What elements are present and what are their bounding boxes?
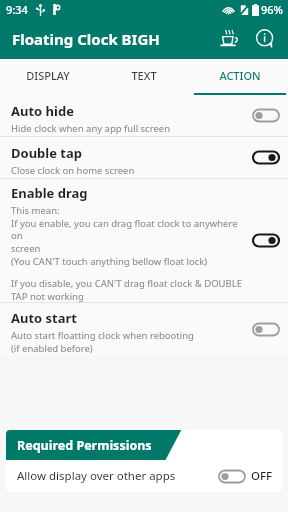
button[interactable]: Buy me a coffee: [213, 23, 245, 55]
staticText: screen: [11, 242, 41, 255]
staticText: Floating Clock BIGH: [12, 29, 160, 49]
button[interactable]: Off: [252, 322, 280, 337]
button[interactable]: ACTION: [192, 59, 288, 95]
button[interactable]: Auto start: [0, 303, 288, 355]
staticText: OFF: [251, 468, 273, 484]
button[interactable]: DISPLAY: [0, 59, 96, 95]
button[interactable]: Auto hide: [0, 95, 288, 136]
staticText: Allow display over other apps: [17, 468, 176, 484]
staticText: 96%: [261, 2, 283, 17]
staticText: Enable drag: [11, 184, 88, 202]
staticText: TAP not working: [11, 290, 84, 302]
staticText: Required Permissions: [17, 437, 152, 454]
button[interactable]: Enable drag: [0, 179, 288, 302]
staticText: Hide clock when any app full screen: [11, 122, 171, 135]
staticText: Auto hide: [11, 102, 74, 120]
staticText: ACTION: [219, 68, 261, 83]
button[interactable]: On: [252, 150, 280, 165]
staticText: Double tap: [11, 144, 82, 162]
button[interactable]: Off: [252, 108, 280, 123]
staticText: (You CAN'T touch anything bellow float l…: [11, 255, 208, 268]
staticText: Auto start floatting clock when rebootin…: [11, 329, 194, 342]
staticText: If you disable, you CAN'T drag float clo…: [11, 277, 242, 290]
button[interactable]: Off: [218, 469, 246, 484]
staticText: This mean:: [11, 204, 60, 217]
staticText: 9:34: [6, 2, 28, 17]
button[interactable]: Double tap: [0, 137, 288, 178]
button[interactable]: Allow display over other apps: [6, 460, 282, 492]
button[interactable]: Info: [249, 23, 281, 55]
staticText: (if enabled before): [11, 342, 93, 355]
staticText: TEXT: [131, 68, 157, 83]
button[interactable]: TEXT: [96, 59, 192, 95]
staticText: DISPLAY: [26, 68, 70, 83]
button[interactable]: On: [252, 233, 280, 248]
staticText: If you enable, you can drag float clock …: [11, 217, 246, 242]
staticText: Auto start: [11, 309, 78, 327]
staticText: Close clock on home screen: [11, 164, 135, 177]
